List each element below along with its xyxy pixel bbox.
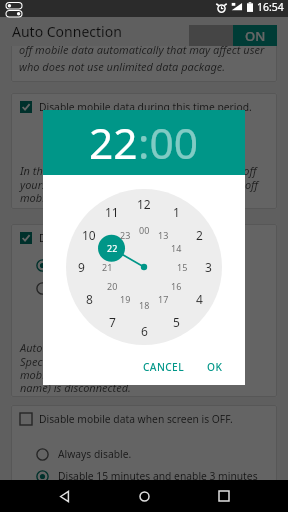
staticText: 4 [196, 291, 203, 307]
staticText: Disable mobile data during this time per… [39, 100, 252, 114]
staticText: 22 [89, 114, 138, 172]
staticText: OK [207, 360, 223, 374]
staticText: 7 [109, 314, 116, 330]
staticText: 9 [78, 259, 85, 275]
button[interactable]: :00 [138, 114, 199, 172]
button[interactable]: Home [128, 480, 160, 512]
staticText: 16 [171, 280, 182, 292]
staticText: 14 [171, 242, 182, 254]
staticText: 5 [173, 314, 180, 330]
button[interactable] [36, 282, 49, 295]
staticText: 1 [173, 204, 180, 220]
staticText: 17 [158, 293, 169, 305]
staticText: 18 [139, 299, 150, 311]
staticText: :00 [138, 114, 199, 172]
button[interactable] [20, 413, 32, 425]
staticText: 15 [177, 261, 188, 273]
staticText: 8 [86, 291, 93, 307]
staticText: Disable on known WiFi only. [58, 281, 193, 295]
staticText: 23 [120, 229, 131, 241]
button[interactable] [20, 101, 32, 113]
staticText: Always disable. [58, 258, 132, 272]
button[interactable]: 22 [89, 114, 138, 172]
button[interactable] [20, 232, 32, 244]
staticText: 16:54 [257, 0, 284, 14]
staticText: 3 [205, 259, 212, 275]
staticText: 10 [82, 227, 96, 243]
staticText: 2 [196, 227, 203, 243]
button[interactable]: OK [201, 357, 229, 377]
staticText: 19 [120, 293, 131, 305]
button[interactable]: Recent apps [208, 480, 240, 512]
staticText: 6 [141, 323, 148, 339]
staticText: Disable mobile data when screen is OFF. [39, 412, 233, 426]
staticText: Disable 15 minutes and enable 3 minutes [58, 469, 258, 483]
staticText: 22 [107, 242, 118, 254]
staticText: Always disable. [58, 447, 132, 461]
staticText: 00 [139, 224, 150, 236]
staticText: Auto Connection [12, 22, 122, 41]
staticText: 21 [102, 261, 113, 273]
button[interactable]: CANCEL [137, 357, 191, 377]
button[interactable] [36, 448, 49, 461]
staticText: 12 [137, 196, 151, 212]
button[interactable] [36, 259, 49, 272]
button[interactable]: ON [189, 21, 288, 42]
staticText: Disable mobile data on WiFi. [39, 231, 176, 245]
staticText: Disable mobile data when needed. It will… [19, 26, 265, 75]
staticText: CANCEL [143, 360, 185, 374]
button[interactable] [36, 470, 49, 483]
staticText: 13 [158, 229, 169, 241]
staticText: In this time period mobile data will be … [20, 163, 259, 205]
button[interactable]: Back [48, 480, 80, 512]
staticText: Automatically disable mobile data on WiF… [20, 340, 228, 395]
staticText: 20 [107, 280, 118, 292]
staticText: 11 [105, 204, 119, 220]
staticText: ON [245, 27, 266, 45]
